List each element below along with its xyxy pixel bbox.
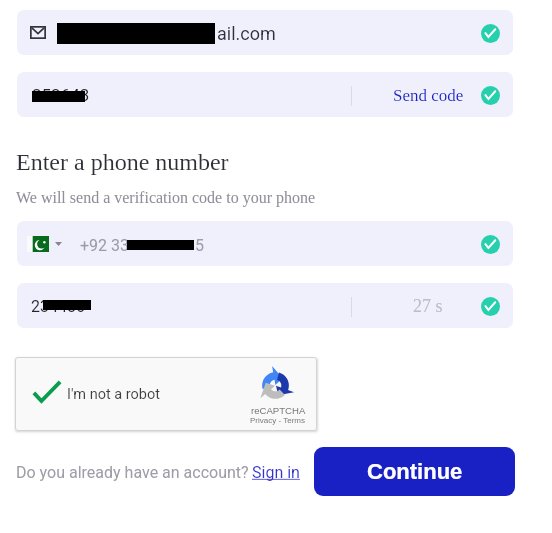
staticText: We will send a verification code to your… bbox=[16, 189, 316, 207]
button[interactable]: ail.com bbox=[17, 10, 513, 55]
other: Verified bbox=[481, 235, 500, 254]
button[interactable]: Send code bbox=[393, 86, 464, 105]
button[interactable]: Sign in bbox=[252, 463, 300, 482]
button[interactable]: I'm not a robot bbox=[15, 357, 317, 431]
other: Verified bbox=[481, 24, 500, 43]
button[interactable]: Select country code bbox=[17, 221, 513, 266]
other: Verified bbox=[481, 86, 500, 105]
staticText: ail.com bbox=[217, 23, 276, 44]
button[interactable]: 353643 bbox=[17, 72, 513, 117]
other: Verified bbox=[481, 297, 500, 316]
staticText: 234486 bbox=[31, 297, 85, 316]
staticText: Enter a phone number bbox=[16, 149, 229, 176]
button[interactable]: 234486 bbox=[17, 283, 513, 328]
staticText: Do you already have an account? bbox=[16, 463, 249, 482]
staticText: reCAPTCHA bbox=[251, 405, 306, 416]
staticText: +92 33 bbox=[80, 236, 130, 255]
button[interactable]: Select country code bbox=[27, 236, 49, 252]
staticText: Continue bbox=[367, 459, 463, 484]
staticText: 353643 bbox=[32, 85, 90, 105]
button[interactable]: Continue bbox=[314, 447, 515, 496]
staticText: I'm not a robot bbox=[67, 386, 160, 403]
staticText: Privacy - Terms bbox=[250, 416, 305, 425]
staticText: 5 bbox=[195, 236, 204, 255]
staticText: 27 s bbox=[413, 296, 443, 316]
